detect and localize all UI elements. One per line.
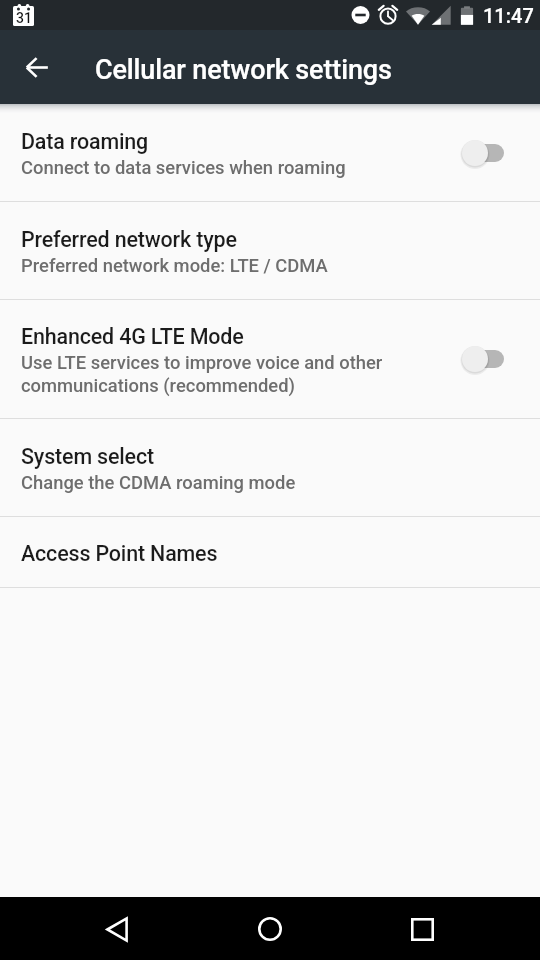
staticText: 31 [16,10,32,26]
button[interactable]: Data roaming [0,104,540,201]
button[interactable]: Enhanced 4G LTE Mode [0,300,540,418]
button[interactable]: Back [87,899,147,959]
button[interactable]: System select [0,419,540,516]
button[interactable]: Access Point Names [0,517,540,587]
staticText: 11:47 [483,4,534,27]
staticText: Connect to data services when roaming [21,157,346,179]
button[interactable]: Enhanced 4G LTE Mode switch [474,335,540,383]
staticText: Use LTE services to improve voice and ot… [21,352,420,397]
staticText: Preferred network mode: LTE / CDMA [21,255,328,277]
staticText: Access Point Names [21,541,218,566]
button[interactable]: Recent apps [392,899,452,959]
staticText: Enhanced 4G LTE Mode [21,324,244,349]
staticText: Change the CDMA roaming mode [21,472,296,494]
button[interactable]: Home [240,899,300,959]
staticText: Preferred network type [21,227,237,252]
staticText: Data roaming [21,129,149,154]
button[interactable]: Preferred network type [0,202,540,299]
staticText: System select [21,444,154,469]
staticText: Cellular network settings [95,54,392,86]
button[interactable]: Navigate up [13,43,61,91]
button[interactable]: Data roaming switch [474,129,540,177]
